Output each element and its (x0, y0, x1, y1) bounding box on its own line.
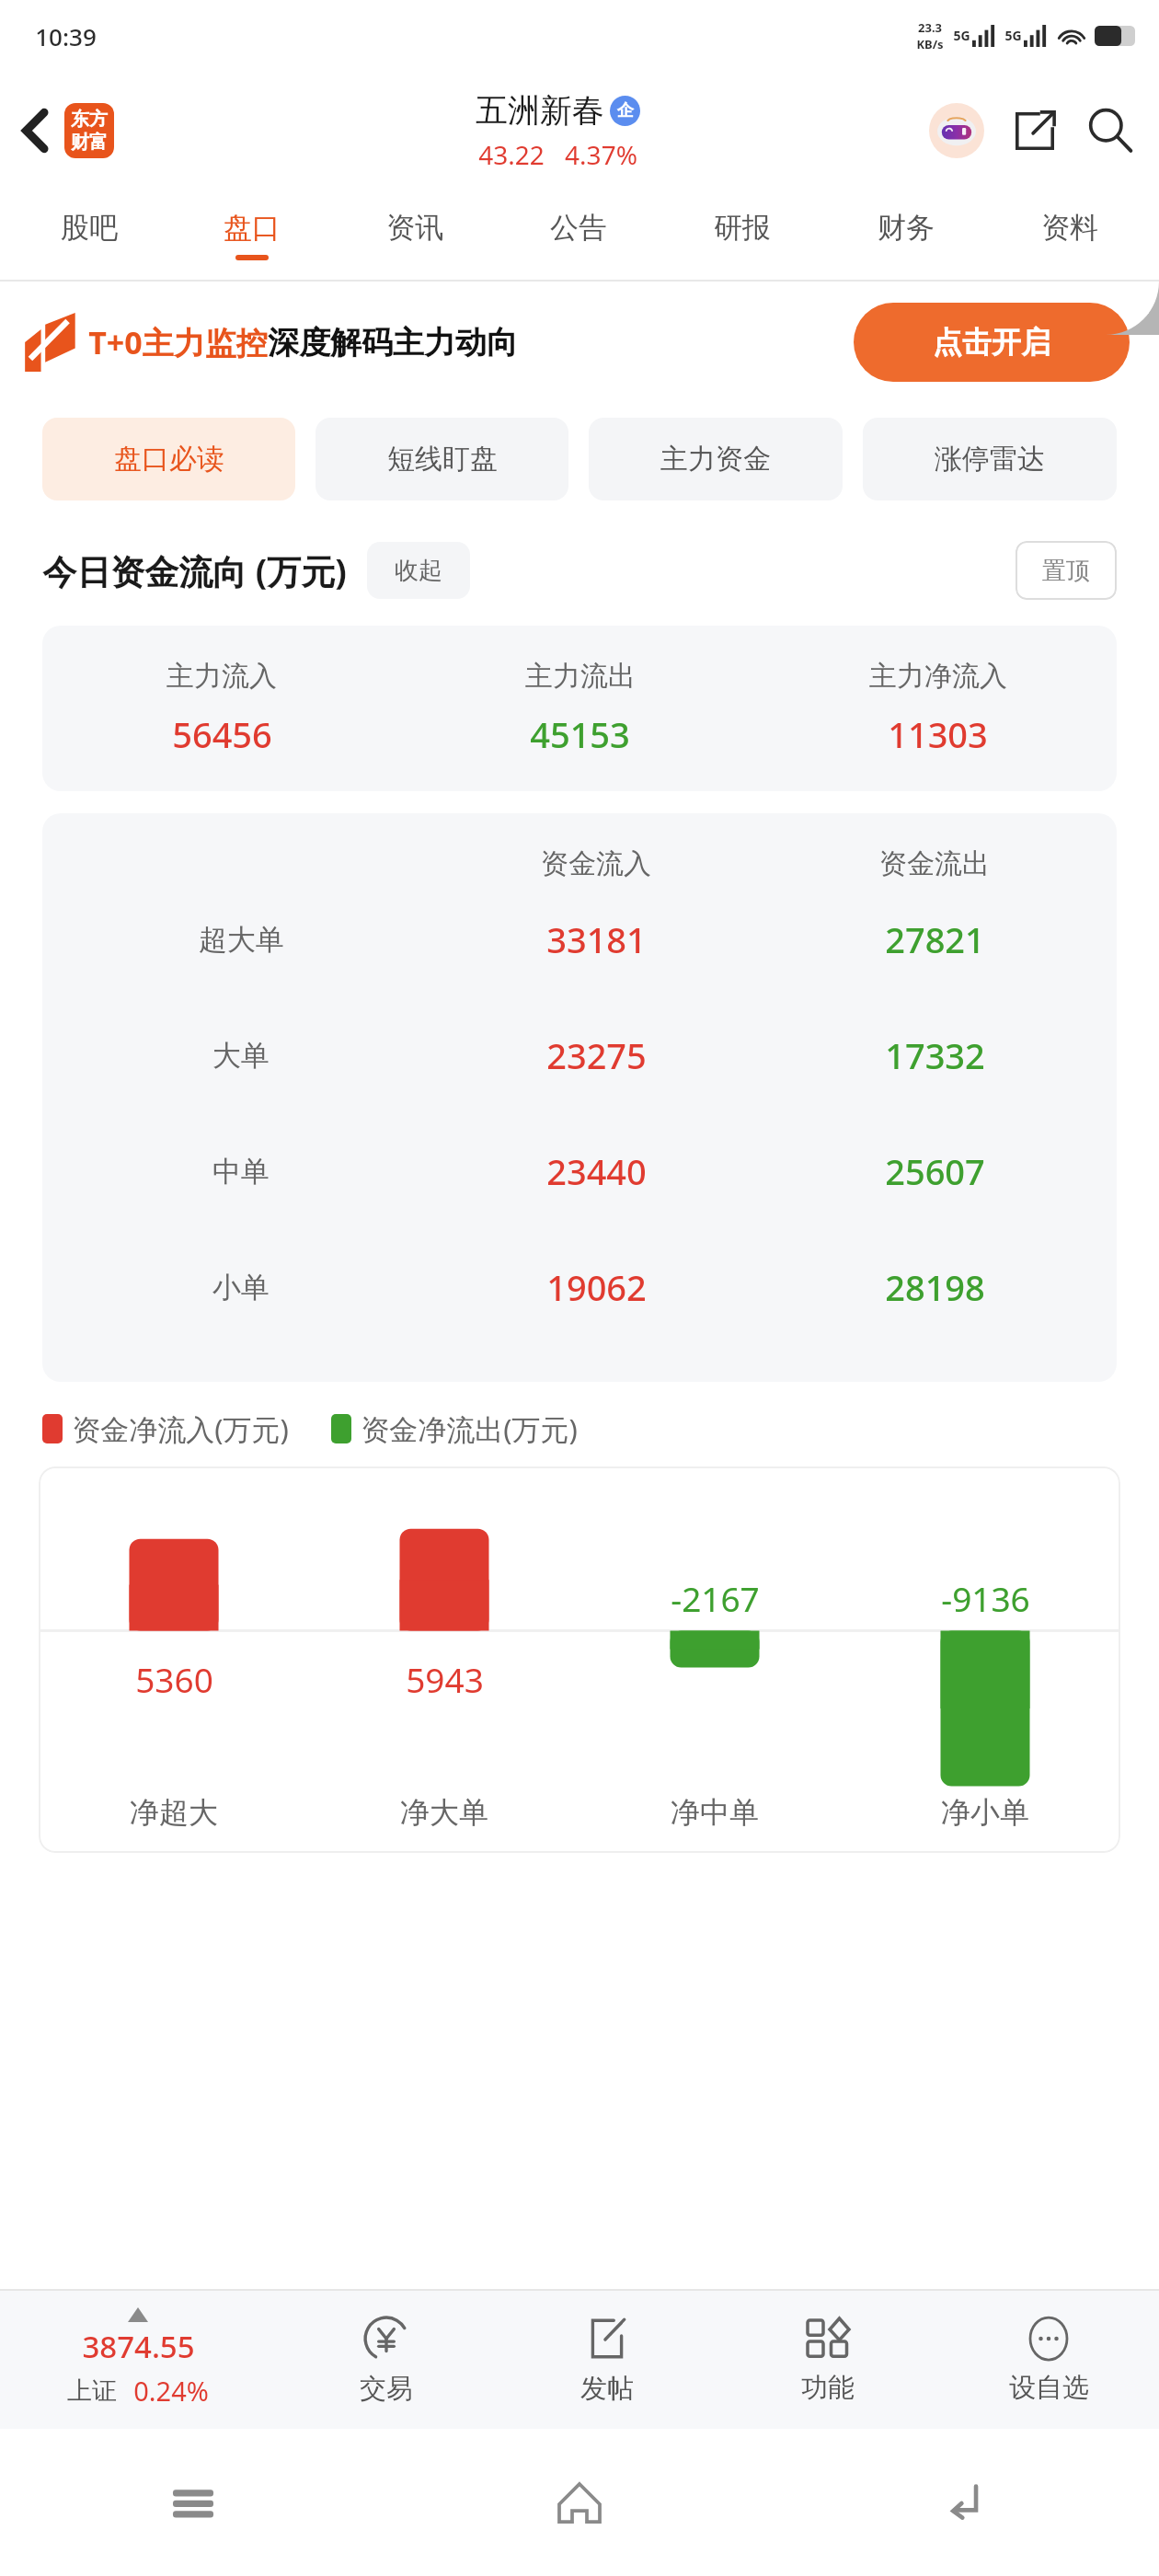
staticText: 资金净流出(万元) (361, 1409, 578, 1448)
staticText: 资讯 (386, 210, 443, 246)
staticText: 23.3 (918, 19, 942, 36)
button[interactable]: 发帖 (497, 2291, 717, 2429)
staticText: 5943 (406, 1656, 484, 1702)
staticText: 企 (617, 100, 634, 121)
staticText: 19062 (546, 1263, 647, 1311)
button[interactable]: Home (386, 2429, 773, 2576)
staticText: 点击开启 (933, 324, 1050, 361)
button[interactable]: 资讯 (333, 190, 497, 280)
button[interactable]: Close ad (1106, 282, 1159, 335)
staticText: 主力资金 (660, 442, 771, 477)
button[interactable]: 收起 (367, 542, 470, 599)
staticText: 公告 (550, 210, 607, 246)
staticText: 0.24% (133, 2373, 209, 2409)
button[interactable]: AI assistant (927, 101, 986, 160)
staticText: 涨停雷达 (935, 442, 1045, 477)
button[interactable]: Back (773, 2429, 1159, 2576)
button[interactable]: 财务 (824, 190, 988, 280)
button[interactable]: 小单 (42, 1229, 1117, 1345)
staticText: 短线盯盘 (387, 442, 498, 477)
button[interactable]: Share (1008, 104, 1061, 157)
staticText: 中单 (212, 1154, 270, 1190)
button[interactable]: 盘口 (170, 190, 333, 280)
staticText: -9136 (941, 1575, 1030, 1621)
staticText: 净小单 (941, 1794, 1029, 1831)
staticText: 5G (953, 27, 970, 44)
button[interactable]: 短线盯盘 (316, 418, 568, 500)
staticText: 超大单 (199, 922, 284, 958)
staticText: 资料 (1041, 210, 1098, 246)
staticText: 发帖 (580, 2372, 634, 2406)
staticText: 资金流入 (541, 846, 651, 881)
button[interactable]: 3874.55 (0, 2291, 276, 2429)
staticText: 28198 (885, 1263, 985, 1311)
staticText: 收起 (395, 556, 442, 586)
button[interactable]: 设自选 (938, 2291, 1159, 2429)
staticText: 今日资金流向 (万元) (42, 547, 347, 594)
staticText: 5G (1004, 27, 1022, 44)
staticText: 上证 (67, 2375, 117, 2407)
button[interactable]: 点击开启 (854, 303, 1130, 382)
button[interactable]: 股吧 (7, 190, 170, 280)
staticText: 小单 (212, 1270, 270, 1305)
staticText: 股吧 (61, 210, 118, 246)
staticText: T+0主力监控 (88, 321, 268, 363)
button[interactable]: 研报 (660, 190, 824, 280)
button[interactable]: 置顶 (1016, 541, 1117, 600)
button[interactable]: 超大单 (42, 881, 1117, 997)
button[interactable]: 5360 (39, 1466, 1120, 1853)
button[interactable]: 涨停雷达 (863, 418, 1117, 500)
button[interactable]: 盘口必读 (42, 418, 295, 500)
staticText: 4.37% (565, 137, 637, 172)
staticText: 财富 (71, 131, 108, 154)
staticText: 25607 (885, 1147, 985, 1195)
staticText: 净大单 (400, 1794, 488, 1831)
staticText: 11303 (888, 710, 988, 758)
staticText: 深度解码主力动向 (268, 323, 518, 362)
staticText: 43.22 (478, 137, 545, 172)
staticText: 23440 (546, 1147, 647, 1195)
staticText: 净中单 (671, 1794, 759, 1831)
staticText: 交易 (360, 2372, 413, 2406)
staticText: 33181 (546, 915, 647, 963)
staticText: 10:39 (35, 20, 97, 52)
staticText: 东方 (71, 108, 108, 131)
staticText: 主力净流入 (869, 659, 1007, 694)
staticText: 置顶 (1042, 556, 1090, 586)
staticText: 27821 (885, 915, 985, 963)
staticText: KB/s (916, 36, 944, 52)
staticText: 五洲新春 (476, 90, 604, 131)
staticText: 3874.55 (82, 2326, 195, 2367)
staticText: 大单 (212, 1038, 270, 1074)
staticText: 主力流入 (166, 659, 277, 694)
staticText: 56456 (172, 710, 272, 758)
staticText: 净超大 (130, 1794, 218, 1831)
staticText: 盘口必读 (114, 442, 224, 477)
button[interactable]: 公告 (497, 190, 660, 280)
staticText: 资金净流入(万元) (72, 1409, 289, 1448)
button[interactable]: 主力流入 (42, 626, 1117, 791)
button[interactable]: 大单 (42, 997, 1117, 1113)
button[interactable]: Search (1084, 104, 1137, 157)
staticText: 功能 (801, 2371, 855, 2405)
staticText: -2167 (671, 1575, 760, 1621)
button[interactable]: 资料 (988, 190, 1152, 280)
button[interactable]: 主力资金 (589, 418, 843, 500)
button[interactable]: Recents (0, 2429, 386, 2576)
staticText: 设自选 (1009, 2371, 1089, 2405)
staticText: 盘口 (224, 210, 281, 246)
button[interactable]: Back (15, 96, 121, 166)
staticText: 5360 (135, 1656, 213, 1702)
staticText: 研报 (714, 210, 771, 246)
staticText: 主力流出 (525, 659, 636, 694)
button[interactable]: 交易 (276, 2291, 497, 2429)
staticText: 17332 (885, 1031, 985, 1079)
button[interactable]: 中单 (42, 1113, 1117, 1229)
staticText: 资金流出 (879, 846, 990, 881)
staticText: 财务 (878, 210, 935, 246)
button[interactable]: 功能 (717, 2291, 938, 2429)
staticText: 45153 (530, 710, 630, 758)
staticText: 23275 (546, 1031, 647, 1079)
